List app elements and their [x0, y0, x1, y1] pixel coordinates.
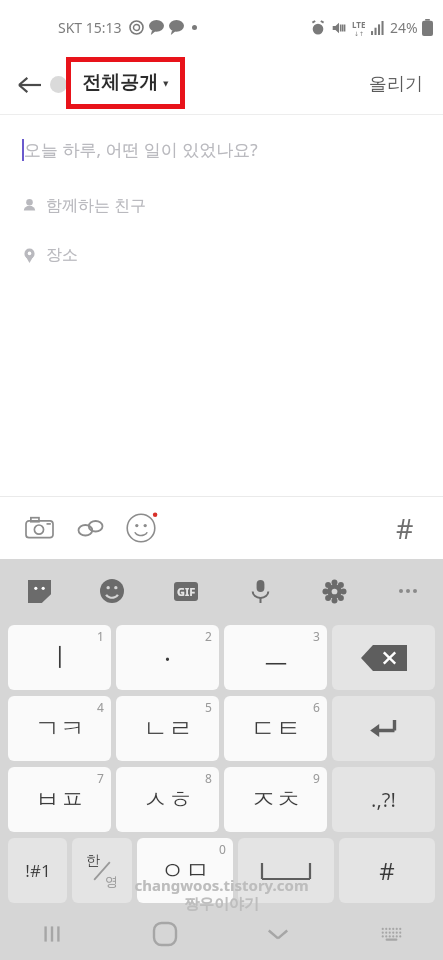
button[interactable]: ㄷㅌ [224, 696, 327, 761]
staticText: 0 [219, 841, 226, 857]
button[interactable]: ㄱㅋ [8, 696, 111, 761]
button[interactable]: Back [8, 63, 52, 107]
staticText: ㅈㅊ [251, 784, 301, 815]
button[interactable]: # [339, 838, 435, 903]
staticText: 짱우이야기 [184, 895, 259, 914]
button[interactable]: Voice input [243, 574, 277, 608]
button[interactable]: del [332, 625, 435, 690]
staticText: 오늘 하루, 어떤 일이 있었나요? [24, 138, 258, 161]
button[interactable]: GIF [169, 574, 203, 608]
button[interactable]: hanyeong [72, 838, 132, 903]
button[interactable]: Sticker [122, 509, 160, 547]
staticText: ㅂㅍ [35, 784, 85, 815]
staticText: 5 [205, 699, 212, 715]
button[interactable]: More options [391, 574, 425, 608]
button[interactable]: ㄴㄹ [116, 696, 219, 761]
staticText: # [396, 510, 414, 547]
staticText: 전체공개 [82, 71, 158, 95]
button[interactable]: ㅈㅊ [224, 767, 327, 832]
staticText: ㄷㅌ [251, 713, 301, 744]
staticText: .,?! [371, 786, 396, 813]
staticText: ㅡ [263, 641, 289, 674]
staticText: · [164, 640, 171, 675]
staticText: # [379, 854, 395, 887]
staticText: changwoos.tistory.com [134, 875, 309, 895]
button[interactable]: Home [143, 912, 187, 956]
staticText: ㅅㅎ [143, 784, 193, 815]
button[interactable]: .,?! [332, 767, 435, 832]
button[interactable]: Hide keyboard [256, 912, 300, 956]
button[interactable]: 함께하는 친구 [0, 188, 443, 222]
staticText: ㄴㄹ [143, 713, 193, 744]
staticText: ▾ [163, 77, 169, 90]
button[interactable]: ㅡ [224, 625, 327, 690]
staticText: SKT 15:13 [58, 18, 122, 37]
staticText: ↓↑ [354, 30, 365, 37]
staticText: !#1 [25, 859, 51, 882]
button[interactable]: · [116, 625, 219, 690]
button[interactable]: ret [332, 696, 435, 761]
staticText: 장소 [46, 245, 78, 265]
staticText: 4 [97, 699, 104, 715]
staticText: 함께하는 친구 [46, 194, 147, 216]
button[interactable]: Hashtag [385, 508, 425, 548]
staticText: ㅣ [47, 641, 73, 674]
button[interactable]: Camera [20, 509, 58, 547]
button[interactable]: 장소 [0, 239, 443, 271]
staticText: 8 [205, 770, 212, 786]
button[interactable]: Keyboard settings [317, 574, 351, 608]
staticText: ㄱㅋ [35, 713, 85, 744]
staticText: 2 [205, 628, 212, 644]
staticText: GIF [177, 584, 196, 599]
button[interactable]: 전체공개 [71, 62, 180, 104]
staticText: 6 [313, 699, 320, 715]
button[interactable]: ㅂㅍ [8, 767, 111, 832]
staticText: LTE [352, 19, 366, 30]
button[interactable]: ㅣ [8, 625, 111, 690]
button[interactable]: ㅇㅁ [137, 838, 233, 903]
button[interactable]: 올리기 [363, 65, 429, 104]
staticText: 9 [313, 770, 320, 786]
staticText: 한 [86, 852, 100, 870]
staticText: 24% [390, 18, 418, 37]
button[interactable]: ㅅㅎ [116, 767, 219, 832]
button[interactable]: Emoji [95, 574, 129, 608]
button[interactable]: Link [71, 509, 109, 547]
button[interactable]: Stickers [22, 574, 56, 608]
button[interactable]: space [238, 838, 334, 903]
button[interactable]: Recents [30, 912, 74, 956]
staticText: 영 [105, 873, 118, 889]
staticText: 7 [97, 770, 104, 786]
staticText: ㅇㅁ [160, 855, 210, 886]
staticText: 올리기 [369, 73, 423, 96]
button[interactable]: !#1 [8, 838, 67, 903]
staticText: 3 [313, 628, 320, 644]
button[interactable]: Change keyboard [369, 912, 413, 956]
staticText: 1 [97, 628, 104, 644]
